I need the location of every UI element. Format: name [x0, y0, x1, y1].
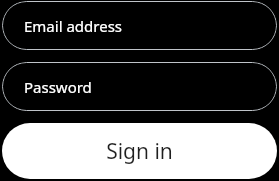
button[interactable]: Email address	[2, 1, 277, 50]
staticText: Sign in	[106, 137, 173, 166]
staticText: Password	[24, 77, 92, 97]
staticText: Email address	[24, 16, 123, 36]
button[interactable]: Sign in	[2, 123, 277, 179]
button[interactable]: Password	[2, 62, 277, 111]
